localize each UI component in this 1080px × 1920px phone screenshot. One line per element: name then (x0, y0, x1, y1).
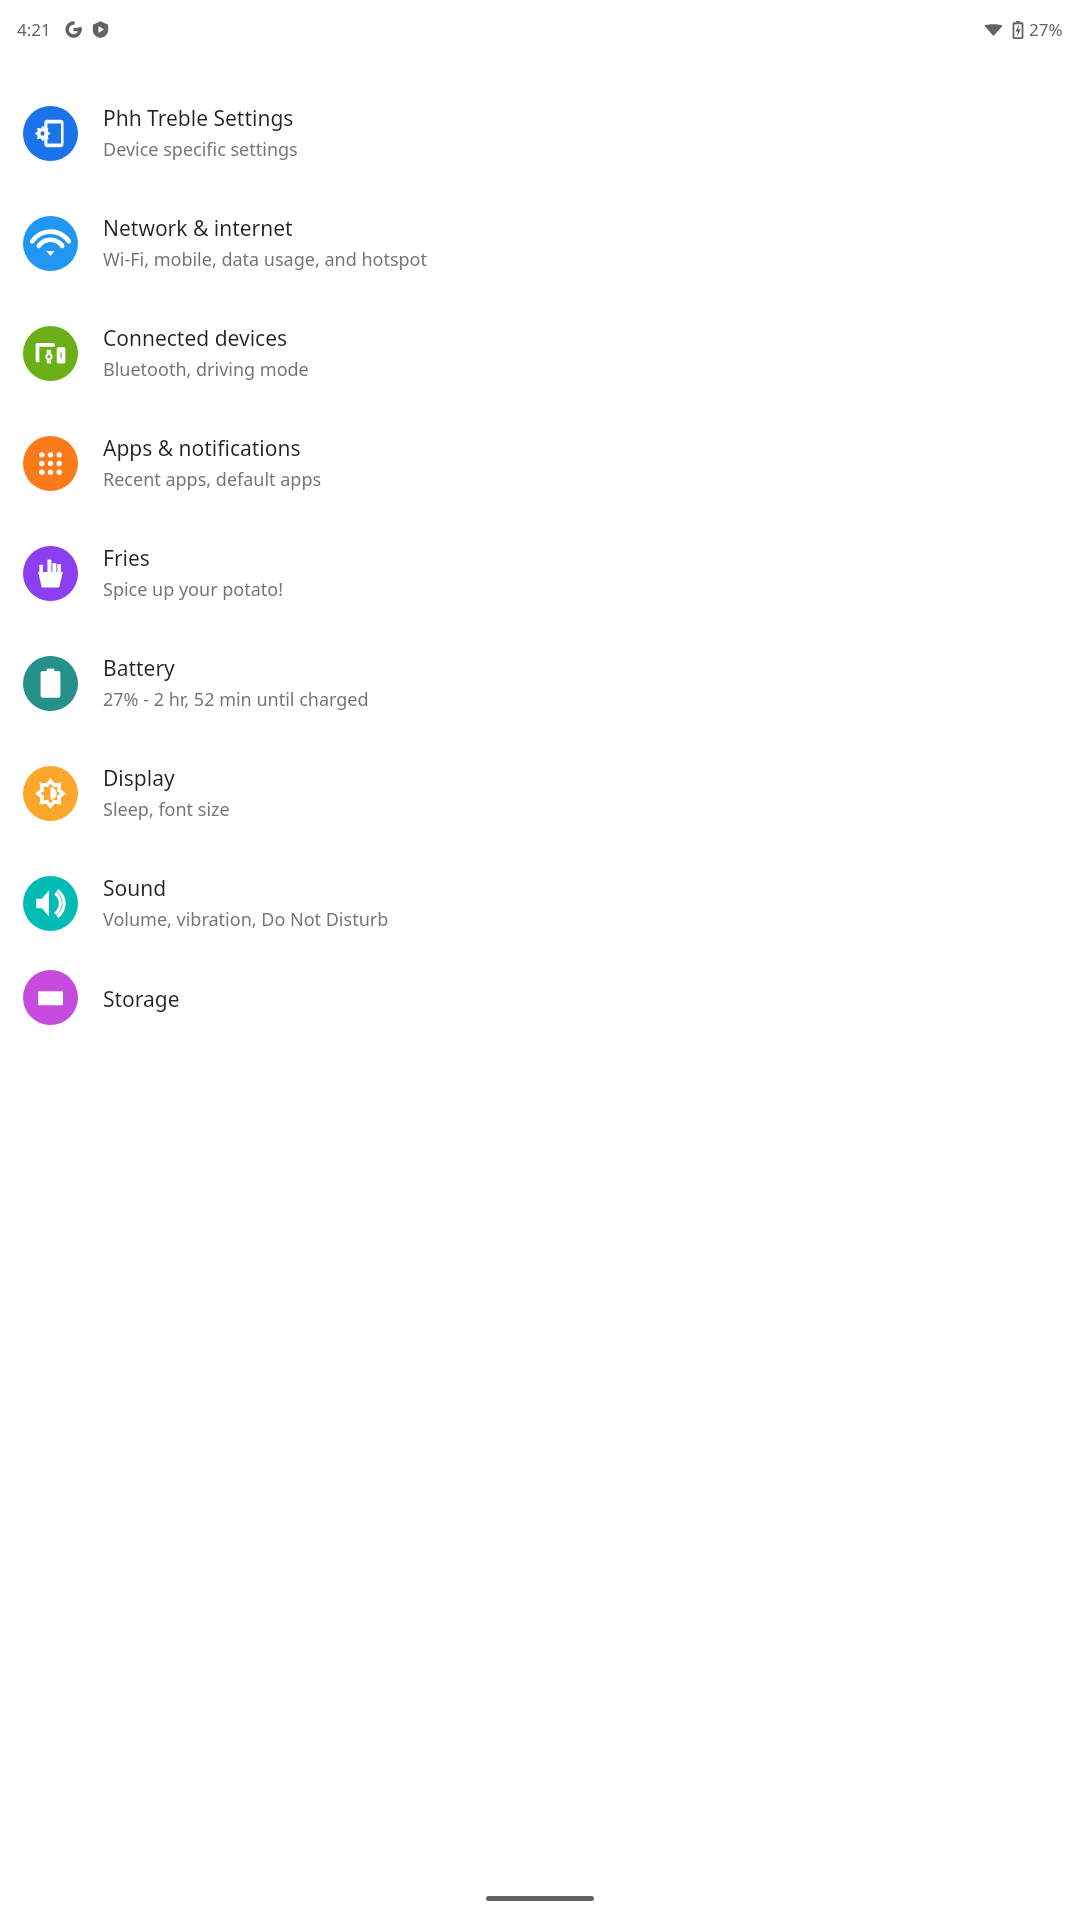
button[interactable]: Battery (0, 628, 1080, 738)
staticText: Phh Treble Settings (103, 104, 294, 133)
staticText: Sleep, font size (103, 797, 230, 822)
staticText: Battery (103, 654, 175, 683)
staticText: 27% (1029, 18, 1063, 41)
staticText: Apps & notifications (103, 434, 301, 463)
staticText: 4:21 (17, 18, 51, 41)
staticText: Volume, vibration, Do Not Disturb (103, 907, 389, 932)
button[interactable]: Network & internet (0, 188, 1080, 298)
staticText: 27% - 2 hr, 52 min until charged (103, 687, 369, 712)
staticText: Wi-Fi, mobile, data usage, and hotspot (103, 247, 427, 272)
button[interactable]: Fries (0, 518, 1080, 628)
staticText: Device specific settings (103, 137, 298, 162)
staticText: Storage (103, 985, 180, 1014)
staticText: Display (103, 764, 175, 793)
staticText: Bluetooth, driving mode (103, 357, 309, 382)
staticText: Fries (103, 544, 150, 573)
staticText: Network & internet (103, 214, 293, 243)
button[interactable]: Phh Treble Settings (0, 78, 1080, 188)
button[interactable]: Storage (0, 958, 1080, 1018)
staticText: Sound (103, 874, 167, 903)
staticText: Connected devices (103, 324, 288, 353)
staticText: Recent apps, default apps (103, 467, 322, 492)
staticText: Spice up your potato! (103, 577, 284, 602)
button[interactable]: Sound (0, 848, 1080, 958)
button[interactable]: Connected devices (0, 298, 1080, 408)
button[interactable]: Apps & notifications (0, 408, 1080, 518)
button[interactable]: Display (0, 738, 1080, 848)
